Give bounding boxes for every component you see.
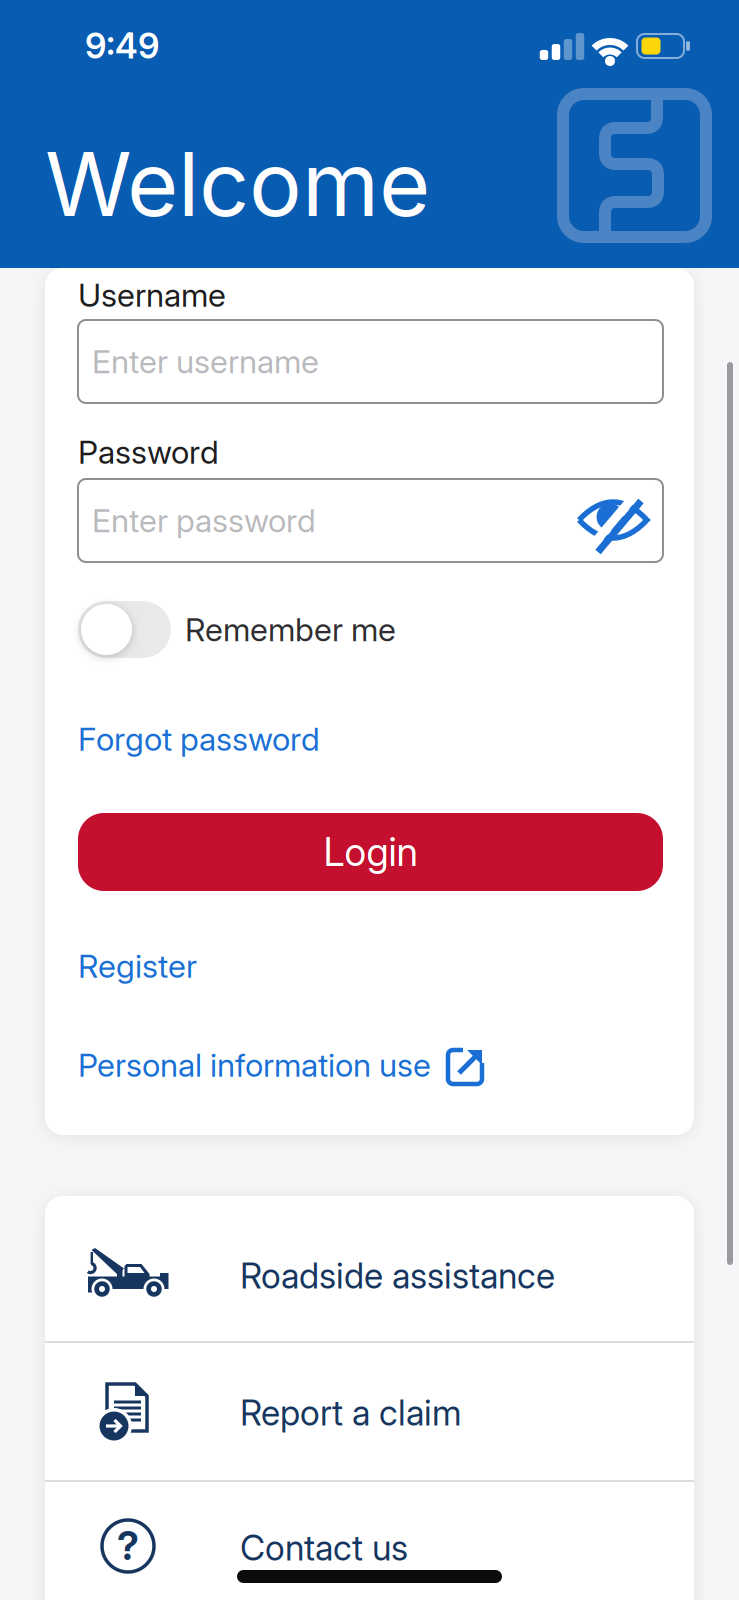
- button[interactable]: Login: [78, 813, 663, 891]
- staticText: Forgot password: [78, 720, 320, 758]
- staticText: Register: [78, 947, 197, 985]
- button[interactable]: Personal information use: [78, 1046, 663, 1084]
- staticText: Password: [78, 433, 219, 471]
- staticText: Roadside assistance: [240, 1256, 555, 1296]
- staticText: Username: [78, 276, 226, 314]
- button[interactable]: ?: [45, 1481, 694, 1600]
- staticText: Enter password: [92, 502, 316, 539]
- staticText: Report a claim: [240, 1393, 462, 1433]
- button[interactable]: Show password: [575, 482, 651, 558]
- staticText: Contact us: [240, 1528, 408, 1568]
- button[interactable]: Register: [78, 947, 663, 985]
- staticText: ?: [117, 1523, 139, 1569]
- staticText: Remember me: [185, 611, 396, 648]
- staticText: Enter username: [92, 343, 319, 380]
- staticText: 9:49: [85, 26, 159, 66]
- button[interactable]: Enter password: [78, 479, 663, 562]
- button[interactable]: Roadside assistance: [45, 1196, 694, 1342]
- button[interactable]: Remember me: [78, 601, 663, 658]
- button[interactable]: Enter username: [78, 320, 663, 403]
- staticText: Login: [323, 829, 417, 875]
- staticText: Welcome: [45, 132, 430, 236]
- button[interactable]: Forgot password: [78, 720, 663, 758]
- staticText: Personal information use: [78, 1046, 431, 1084]
- button[interactable]: Report a claim: [45, 1342, 694, 1481]
